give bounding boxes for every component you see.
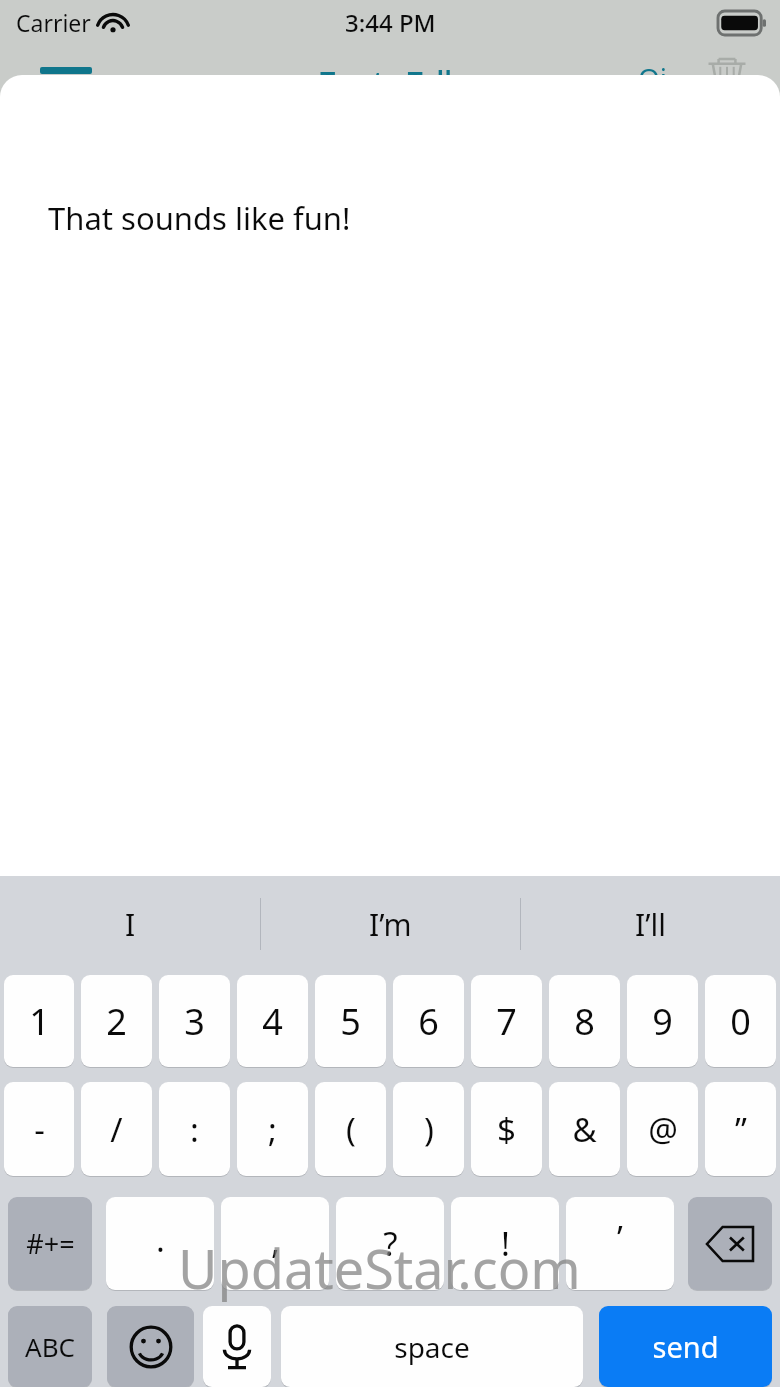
staticText: Carrier bbox=[16, 7, 91, 38]
button[interactable]: ? bbox=[336, 1197, 444, 1290]
staticText: send bbox=[652, 1327, 719, 1366]
staticText: ’ bbox=[617, 1215, 623, 1260]
staticText: 2 bbox=[106, 997, 127, 1046]
button[interactable]: @ bbox=[627, 1082, 698, 1176]
button[interactable]: 1 bbox=[4, 975, 74, 1067]
button[interactable]: / bbox=[81, 1082, 152, 1176]
staticText: 7 bbox=[496, 997, 517, 1046]
button[interactable]: 2 bbox=[81, 975, 152, 1067]
button[interactable]: , bbox=[221, 1197, 329, 1290]
staticText: ; bbox=[268, 1107, 277, 1152]
button[interactable]: 8 bbox=[549, 975, 620, 1067]
button[interactable]: #+= bbox=[8, 1197, 92, 1290]
staticText: / bbox=[110, 1107, 123, 1152]
staticText: ? bbox=[383, 1221, 398, 1266]
button[interactable]: 6 bbox=[393, 975, 464, 1067]
button[interactable]: - bbox=[4, 1082, 74, 1176]
staticText: 8 bbox=[574, 997, 595, 1046]
staticText: - bbox=[34, 1107, 45, 1152]
staticText: Qi bbox=[638, 59, 668, 89]
button[interactable]: I’ll bbox=[521, 876, 780, 972]
button[interactable]: 4 bbox=[237, 975, 308, 1067]
button[interactable]: ; bbox=[237, 1082, 308, 1176]
staticText: @ bbox=[648, 1107, 678, 1152]
button[interactable]: 7 bbox=[471, 975, 542, 1067]
button[interactable]: I bbox=[0, 876, 260, 972]
staticText: 4 bbox=[262, 997, 283, 1046]
button[interactable]: ’ bbox=[566, 1197, 674, 1290]
button[interactable]: 0 bbox=[705, 975, 776, 1067]
staticText: : bbox=[190, 1107, 199, 1152]
button[interactable]: ( bbox=[315, 1082, 386, 1176]
button[interactable]: 5 bbox=[315, 975, 386, 1067]
staticText: I bbox=[125, 904, 136, 945]
button[interactable]: I’m bbox=[261, 876, 520, 972]
staticText: 3 bbox=[184, 997, 205, 1046]
staticText: I’ll bbox=[635, 904, 666, 945]
button[interactable]: : bbox=[159, 1082, 230, 1176]
staticText: Tap to Talk bbox=[320, 62, 461, 92]
staticText: 6 bbox=[418, 997, 439, 1046]
staticText: & bbox=[572, 1107, 597, 1152]
button[interactable]: 3 bbox=[159, 975, 230, 1067]
staticText: space bbox=[394, 1328, 470, 1366]
staticText: ( bbox=[346, 1107, 356, 1152]
staticText: 0 bbox=[730, 997, 751, 1046]
button[interactable]: 9 bbox=[627, 975, 698, 1067]
button[interactable]: space bbox=[281, 1306, 583, 1387]
staticText: ” bbox=[735, 1107, 747, 1152]
staticText: I’m bbox=[369, 904, 412, 945]
staticText: ) bbox=[424, 1107, 434, 1152]
staticText: 3:44 PM bbox=[345, 6, 436, 39]
button[interactable]: ” bbox=[705, 1082, 776, 1176]
staticText: 9 bbox=[652, 997, 673, 1046]
button[interactable]: $ bbox=[471, 1082, 542, 1176]
button[interactable]: ! bbox=[451, 1197, 559, 1290]
button[interactable]: Emoji bbox=[107, 1306, 194, 1387]
button[interactable]: ) bbox=[393, 1082, 464, 1176]
button[interactable]: & bbox=[549, 1082, 620, 1176]
staticText: UpdateStar.com bbox=[178, 1231, 581, 1305]
staticText: , bbox=[271, 1219, 280, 1264]
button[interactable]: ABC bbox=[8, 1306, 92, 1387]
staticText: 5 bbox=[340, 997, 361, 1046]
staticText: ABC bbox=[25, 1329, 75, 1364]
button[interactable]: Backspace bbox=[688, 1197, 772, 1290]
staticText: $ bbox=[497, 1107, 516, 1152]
staticText: 1 bbox=[29, 997, 50, 1046]
button[interactable]: Dictate bbox=[203, 1306, 271, 1387]
staticText: That sounds like fun! bbox=[48, 197, 351, 239]
staticText: #+= bbox=[26, 1225, 75, 1262]
button[interactable]: Menu bbox=[40, 67, 92, 74]
staticText: . bbox=[156, 1217, 165, 1262]
button[interactable]: . bbox=[106, 1197, 214, 1290]
button[interactable]: Delete bbox=[706, 56, 748, 86]
button[interactable]: send bbox=[599, 1306, 772, 1387]
staticText: ! bbox=[501, 1221, 510, 1266]
